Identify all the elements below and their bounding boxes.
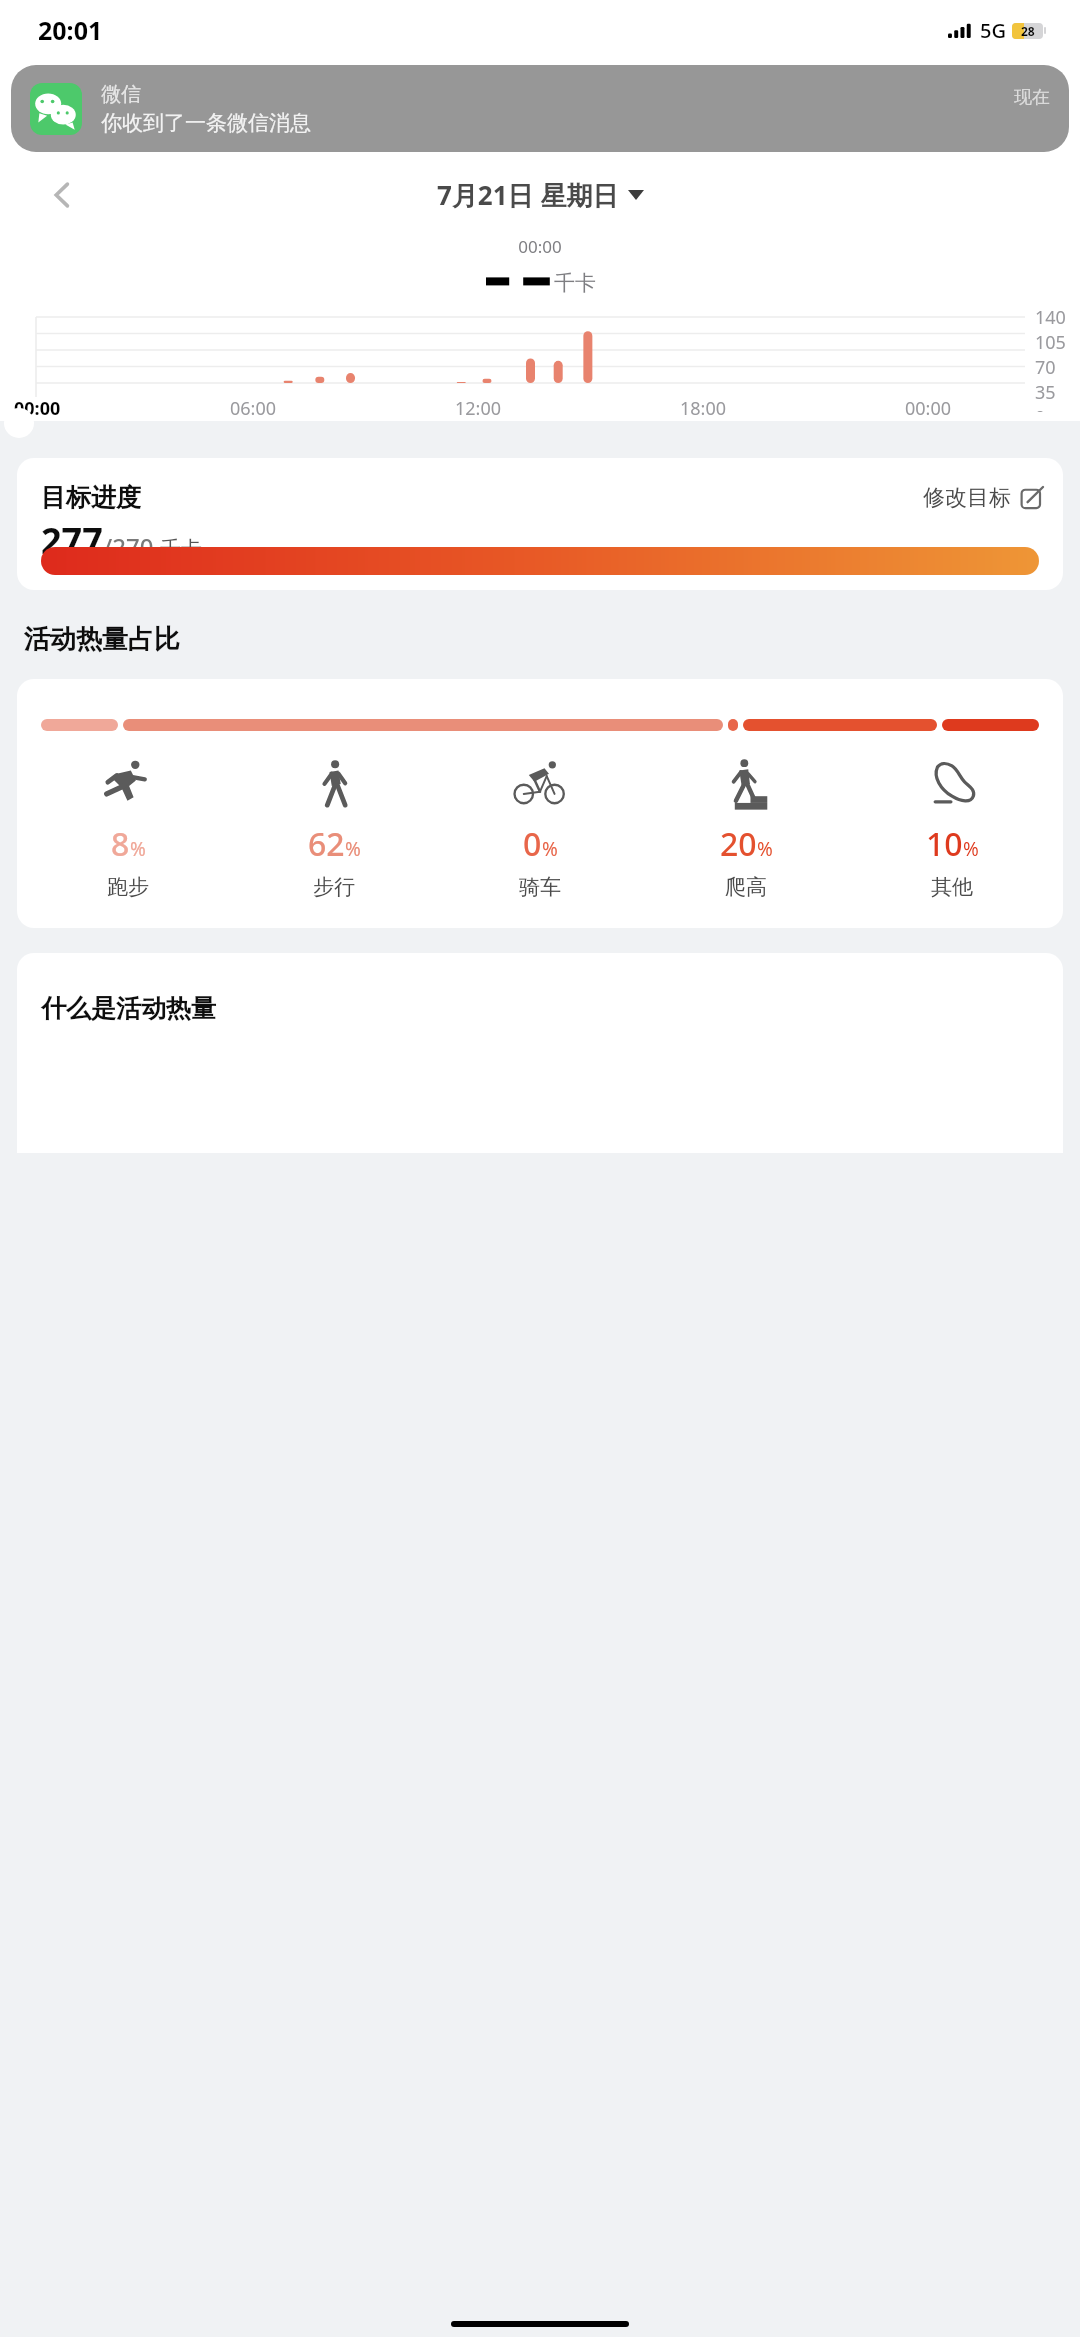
staticText: 18:00: [680, 396, 727, 421]
staticText: 00:00: [905, 396, 952, 421]
staticText: 微信: [101, 82, 141, 107]
staticText: 62: [308, 822, 345, 866]
staticText: 骑车: [519, 874, 561, 900]
staticText: 28: [1021, 23, 1035, 39]
staticText: 现在: [1014, 86, 1050, 109]
staticText: 20: [720, 822, 757, 866]
staticText: 日: [123, 98, 148, 129]
staticText: 0: [1035, 405, 1046, 412]
button[interactable]: 什么是活动热量: [17, 953, 1063, 1153]
button[interactable]: 0: [437, 757, 643, 900]
staticText: 105: [1035, 330, 1066, 355]
staticText: 5G: [980, 17, 1006, 44]
button[interactable]: 周: [270, 98, 540, 154]
staticText: %: [963, 836, 979, 862]
staticText: 00:00: [0, 235, 1080, 258]
staticText: 140: [1035, 305, 1066, 330]
button[interactable]: 年: [810, 98, 1080, 154]
button[interactable]: 7月21日 星期日: [437, 177, 644, 213]
button[interactable]: Previous day: [45, 178, 79, 212]
button[interactable]: 日: [0, 98, 270, 154]
staticText: 00:00: [14, 396, 61, 421]
staticText: 其他: [931, 874, 973, 900]
staticText: %: [345, 836, 361, 862]
button[interactable]: 微信: [11, 65, 1069, 152]
staticText: 什么是活动热量: [41, 993, 216, 1024]
button[interactable]: 月: [540, 98, 810, 154]
button[interactable]: 20: [643, 757, 849, 900]
staticText: /270: [103, 530, 154, 563]
staticText: 8: [111, 822, 130, 866]
button[interactable]: 62: [231, 757, 437, 900]
staticText: 跑步: [107, 874, 149, 900]
staticText: 10: [926, 822, 963, 866]
staticText: 爬高: [725, 874, 767, 900]
staticText: 7月21日 星期日: [437, 177, 619, 213]
staticText: 06:00: [230, 396, 277, 421]
staticText: %: [757, 836, 773, 862]
staticText: 35: [1035, 380, 1056, 405]
staticText: 活动热量占比: [24, 623, 180, 656]
button[interactable]: 10: [849, 757, 1055, 900]
staticText: %: [130, 836, 146, 862]
staticText: 70: [1035, 355, 1056, 380]
staticText: 步行: [313, 874, 355, 900]
staticText: 12:00: [455, 396, 502, 421]
staticText: 千卡: [160, 536, 202, 562]
staticText: %: [542, 836, 558, 862]
staticText: 20:01: [38, 13, 103, 47]
staticText: 277: [41, 516, 103, 565]
button[interactable]: 8: [25, 757, 231, 900]
staticText: 千卡: [554, 270, 596, 296]
staticText: 你收到了一条微信消息: [101, 110, 311, 136]
staticText: 目标进度: [41, 482, 141, 513]
staticText: 修改目标: [923, 484, 1011, 512]
button[interactable]: 修改目标: [923, 484, 1043, 512]
staticText: 0: [523, 822, 542, 866]
